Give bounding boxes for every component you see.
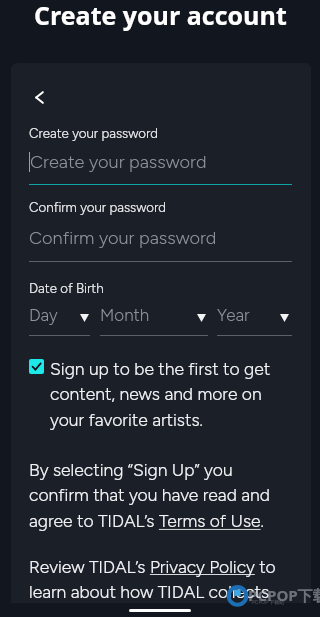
button[interactable] (29, 199, 292, 261)
staticText: Month (100, 305, 150, 325)
staticText: PCPOP下载 (248, 585, 320, 605)
button[interactable] (100, 303, 208, 336)
button[interactable] (217, 303, 292, 336)
staticText: PCPOP 下载站 (252, 599, 285, 605)
button[interactable] (29, 303, 90, 336)
staticText: Day (29, 305, 58, 325)
staticText: Date of Birth (29, 280, 104, 296)
staticText: Review TIDAL’s Privacy Policy to learn a… (29, 556, 279, 603)
staticText: By selecting “Sign Up” you confirm that … (29, 459, 279, 532)
staticText: Sign up to be the first to get content, … (50, 358, 274, 431)
staticText: Create your account (34, 0, 287, 32)
staticText: Year (217, 305, 250, 325)
staticText: Confirm your password (29, 199, 167, 215)
staticText: Confirm your password (29, 227, 217, 249)
button[interactable] (29, 122, 292, 186)
staticText: Create your password (30, 151, 207, 173)
button[interactable] (29, 356, 292, 432)
staticText: Create your password (29, 125, 159, 141)
button[interactable]: Back (26, 84, 52, 110)
